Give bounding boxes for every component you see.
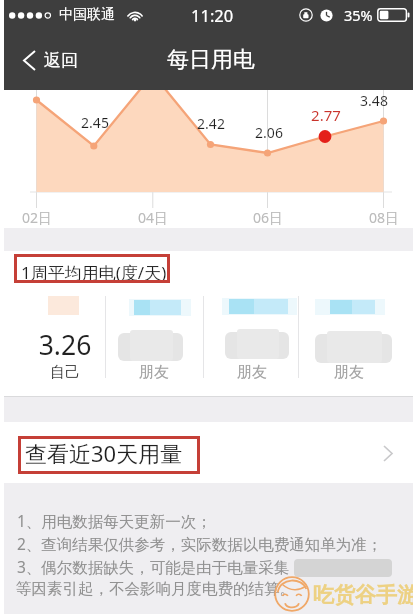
- staticText: 返回: [44, 50, 78, 71]
- button[interactable]: 返回: [17, 42, 84, 79]
- staticText: 朋友: [104, 363, 204, 382]
- staticText: 11:20: [191, 4, 234, 26]
- staticText: 06日: [238, 208, 298, 227]
- button[interactable]: 朋友: [104, 363, 204, 382]
- staticText: 08日: [354, 208, 413, 227]
- staticText: 2.06: [239, 123, 299, 142]
- staticText: 自己: [15, 363, 115, 382]
- button[interactable]: 朋友: [202, 363, 302, 382]
- staticText: 朋友: [299, 363, 399, 382]
- staticText: 3.26: [15, 327, 115, 363]
- staticText: 2.77: [296, 105, 356, 125]
- staticText: 吃货谷手游: [313, 582, 413, 608]
- staticText: 2.45: [65, 113, 125, 132]
- button[interactable]: 朋友: [299, 363, 399, 382]
- staticText: 35%: [344, 5, 373, 25]
- staticText: 等因素引起，不会影响月度电费的结算。: [16, 579, 295, 599]
- staticText: 3.48: [344, 91, 404, 110]
- button[interactable]: 查看近30天用量: [0, 422, 413, 484]
- staticText: 1、用电数据每天更新一次；: [17, 510, 212, 531]
- staticText: 朋友: [202, 363, 302, 382]
- staticText: 1周平均用电(度/天): [21, 261, 167, 284]
- staticText: 3、偶尔数据缺失，可能是由于电量采集: [17, 556, 290, 577]
- staticText: 04日: [123, 208, 183, 227]
- staticText: 每日用电: [167, 46, 255, 74]
- staticText: 02日: [7, 208, 67, 227]
- staticText: 2.42: [181, 114, 241, 133]
- staticText: 查看近30天用量: [25, 438, 183, 468]
- staticText: 2、查询结果仅供参考，实际数据以电费通知单为准；: [17, 533, 383, 554]
- staticText: 中国联通: [59, 6, 115, 24]
